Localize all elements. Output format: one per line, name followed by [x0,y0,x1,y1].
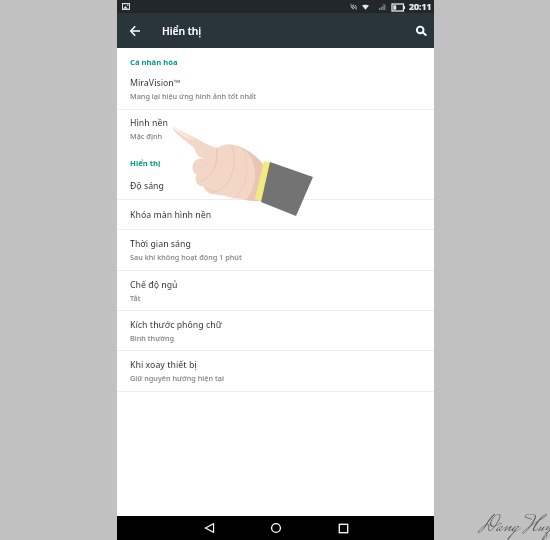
button[interactable]: Home [263,516,289,540]
button[interactable]: Độ sáng [117,173,434,199]
button[interactable]: Kích thước phông chữ [117,311,434,350]
staticText: Thời gian sáng [130,238,191,250]
button[interactable]: Thời gian sáng [117,230,434,270]
button[interactable]: Search [399,13,434,48]
staticText: Cá nhân hóa [130,57,178,67]
staticText: Tắt [130,293,141,303]
button[interactable]: Recent apps [330,516,356,540]
button[interactable]: MiraVision™ [117,69,434,109]
staticText: Mặc định [130,131,163,141]
staticText: Mang lại hiệu ứng hình ảnh tốt nhất [130,91,257,101]
staticText: Khóa màn hình nền [130,209,212,221]
staticText: Khi xoay thiết bị [130,359,197,371]
staticText: Hiển thị [130,158,161,168]
button[interactable]: Khóa màn hình nền [117,200,434,229]
staticText: Hiển thị [162,24,202,38]
staticText: Hình nền [130,117,168,129]
button[interactable]: Chế độ ngủ [117,271,434,310]
staticText: Dang Huy [478,510,550,540]
staticText: Độ sáng [130,180,164,192]
staticText: Giữ nguyên hướng hiện tại [130,373,224,383]
button[interactable]: Back [117,13,152,48]
button[interactable]: Hình nền [117,110,434,147]
button[interactable]: Khi xoay thiết bị [117,351,434,391]
staticText: Kích thước phông chữ [130,319,222,331]
staticText: Bình thường [130,333,174,343]
staticText: 20:11 [409,1,432,13]
staticText: MiraVision™ [130,77,181,89]
button[interactable]: Back [196,516,222,540]
staticText: Sau khi không hoạt động 1 phút [130,252,242,262]
staticText: Chế độ ngủ [130,279,178,291]
